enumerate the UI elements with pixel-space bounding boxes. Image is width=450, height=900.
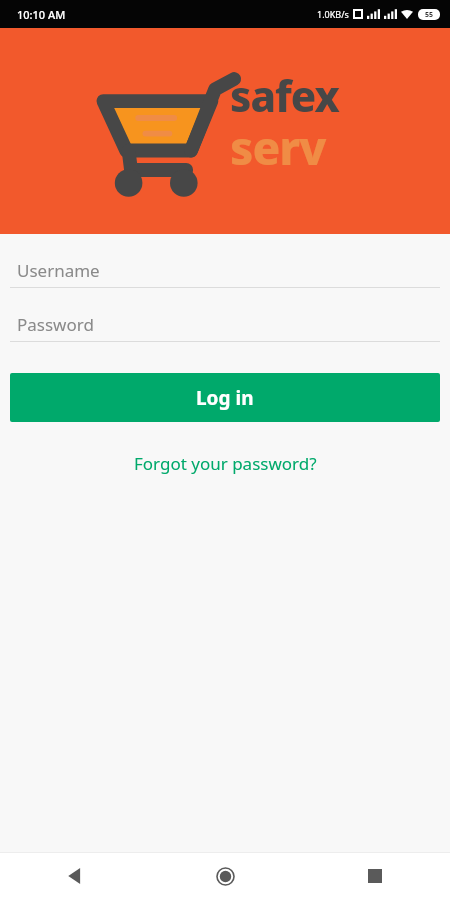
staticText: Forgot your password? xyxy=(134,452,317,475)
button[interactable]: Password xyxy=(10,308,440,342)
button[interactable]: Forgot your password? xyxy=(0,448,450,479)
staticText: 10:10 AM xyxy=(17,7,66,22)
staticText: Password xyxy=(17,313,94,336)
button[interactable]: Back xyxy=(0,852,150,900)
button[interactable]: Recents xyxy=(300,852,450,900)
button[interactable]: Home xyxy=(150,852,300,900)
staticText: 1.0KB/s xyxy=(317,8,349,20)
staticText: 55 xyxy=(425,10,434,20)
button[interactable]: Log in xyxy=(10,373,440,422)
staticText: serv xyxy=(230,116,326,179)
button[interactable]: Username xyxy=(10,254,440,288)
staticText: safex xyxy=(230,67,339,124)
staticText: Log in xyxy=(196,385,254,411)
staticText: Username xyxy=(17,259,100,282)
